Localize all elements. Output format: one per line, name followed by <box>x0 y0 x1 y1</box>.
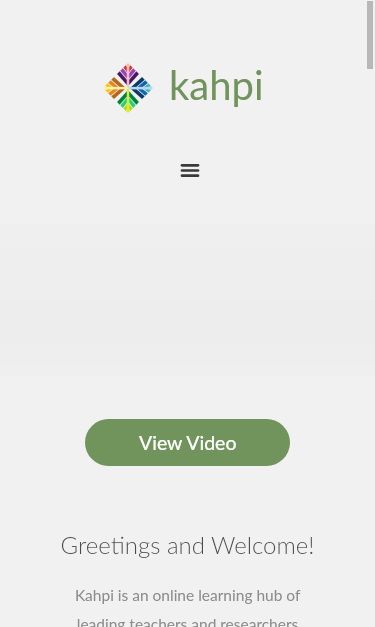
button[interactable]: View Video <box>85 419 290 466</box>
staticText: Greetings and Welcome! <box>0 530 375 559</box>
staticText: View Video <box>139 431 237 454</box>
button[interactable]: Open menu <box>166 148 210 192</box>
staticText: Kahpi is an online learning hub of leadi… <box>66 586 309 627</box>
staticText: kahpi <box>169 61 264 109</box>
